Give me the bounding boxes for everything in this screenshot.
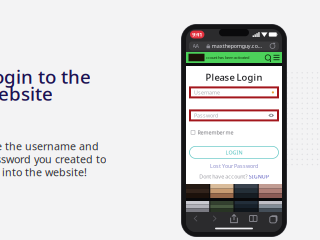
- staticText: Please Login: [205, 71, 262, 83]
- button[interactable]: SIGNUP: [249, 173, 269, 180]
- staticText: website: [0, 81, 53, 106]
- button[interactable]: Share: [224, 214, 244, 223]
- staticText: Username: [194, 89, 220, 96]
- staticText: 9:41: [192, 31, 202, 38]
- staticText: Lost Your Password: [210, 162, 258, 169]
- button[interactable]: Back: [186, 215, 205, 222]
- staticText: log into the website!: [0, 165, 87, 179]
- staticText: maxthepornguy.com: [212, 42, 261, 50]
- staticText: AA: [192, 42, 198, 50]
- staticText: Login to the: [0, 64, 91, 89]
- button[interactable]: Tabs: [263, 215, 282, 222]
- staticText: LOGIN: [225, 149, 242, 156]
- staticText: SIGNUP: [249, 173, 269, 180]
- staticText: Use the username and: [0, 139, 99, 153]
- staticText: ccount has been activated: [206, 55, 249, 60]
- staticText: Password: [194, 112, 218, 119]
- button[interactable]: LOGIN: [189, 146, 278, 158]
- button[interactable]: Bookmarks: [244, 215, 263, 222]
- button[interactable]: Forward: [205, 215, 224, 222]
- staticText: Remember me: [197, 129, 233, 136]
- staticText: Dont have account?: [199, 173, 247, 180]
- staticText: password you created to: [0, 152, 106, 166]
- button[interactable]: Lost Your Password: [210, 162, 258, 169]
